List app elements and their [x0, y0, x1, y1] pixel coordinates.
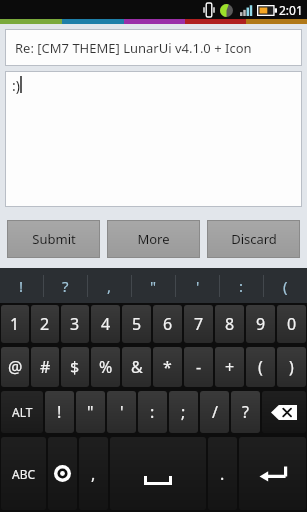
button[interactable]: Input settings	[48, 437, 77, 510]
button[interactable]: /	[200, 391, 229, 433]
button[interactable]: Enter	[239, 437, 306, 510]
staticText: )	[289, 356, 294, 378]
button[interactable]: :	[138, 391, 167, 433]
staticText: Discard	[231, 230, 277, 248]
staticText: More	[137, 230, 170, 248]
button[interactable]: :	[220, 268, 263, 303]
staticText: @	[8, 356, 23, 378]
staticText: &	[131, 356, 143, 378]
staticText: "	[150, 276, 157, 296]
staticText: Submit	[32, 230, 76, 248]
staticText: 7	[194, 313, 204, 335]
staticText: 8	[225, 313, 235, 335]
staticText: !	[19, 276, 24, 296]
staticText: ALT	[12, 404, 33, 420]
button[interactable]: More	[107, 220, 200, 258]
button[interactable]: Submit	[7, 220, 100, 258]
button[interactable]: ;	[169, 391, 198, 433]
button[interactable]: ?	[231, 391, 260, 433]
button[interactable]: 7	[184, 305, 213, 343]
staticText: (	[258, 356, 263, 378]
staticText: !	[57, 401, 62, 423]
staticText: 4	[101, 313, 111, 335]
button[interactable]: 6	[153, 305, 182, 343]
button[interactable]: *	[153, 347, 182, 387]
staticText: :	[150, 401, 155, 423]
button[interactable]: 3	[61, 305, 89, 343]
button[interactable]: Backspace	[262, 391, 306, 433]
button[interactable]: &	[122, 347, 151, 387]
button[interactable]: Re: [CM7 THEME] LunarUi v4.1.0 + Icon	[5, 29, 302, 66]
button[interactable]: #	[31, 347, 59, 387]
staticText: -	[196, 356, 202, 378]
staticText: ,	[107, 276, 112, 296]
button[interactable]: '	[107, 391, 136, 433]
button[interactable]: :)	[5, 71, 302, 207]
staticText: :)	[12, 76, 20, 95]
button[interactable]: 4	[91, 305, 120, 343]
button[interactable]: ,	[79, 437, 108, 510]
button[interactable]: $	[61, 347, 89, 387]
button[interactable]: Discard	[207, 220, 300, 258]
button[interactable]: %	[91, 347, 120, 387]
button[interactable]: 5	[122, 305, 151, 343]
button[interactable]: ABC	[1, 437, 46, 510]
button[interactable]: !	[45, 391, 74, 433]
staticText: $	[70, 356, 80, 378]
staticText: ?	[242, 401, 249, 423]
staticText: ABC	[12, 466, 36, 482]
button[interactable]: ,	[88, 268, 131, 303]
staticText: 6	[163, 313, 173, 335]
button[interactable]: ALT	[1, 391, 43, 433]
button[interactable]: 0	[277, 305, 306, 343]
staticText: *	[163, 356, 172, 378]
button[interactable]: ?	[44, 268, 87, 303]
staticText: 3	[70, 313, 80, 335]
staticText: ,	[91, 463, 96, 485]
staticText: '	[120, 401, 124, 423]
button[interactable]: "	[76, 391, 105, 433]
button[interactable]: (	[264, 268, 307, 303]
staticText: 5	[132, 313, 142, 335]
staticText: ;	[181, 401, 186, 423]
staticText: #	[40, 356, 51, 378]
staticText: 0	[287, 313, 297, 335]
staticText: (	[283, 276, 288, 296]
staticText: 2:01	[279, 2, 303, 18]
button[interactable]: Space	[110, 437, 206, 510]
staticText: %	[99, 356, 113, 378]
button[interactable]: 2	[31, 305, 59, 343]
staticText: 2	[40, 313, 50, 335]
button[interactable]: 1	[1, 305, 29, 343]
button[interactable]: 8	[215, 305, 244, 343]
staticText: /	[212, 401, 218, 423]
button[interactable]: +	[215, 347, 244, 387]
button[interactable]: !	[0, 268, 43, 303]
button[interactable]: -	[184, 347, 213, 387]
button[interactable]: (	[246, 347, 275, 387]
staticText: Re: [CM7 THEME] LunarUi v4.1.0 + Icon	[15, 39, 252, 57]
staticText: 9	[256, 313, 266, 335]
button[interactable]: '	[176, 268, 219, 303]
button[interactable]: .	[208, 437, 237, 510]
staticText: 1	[10, 313, 20, 335]
staticText: +	[225, 356, 235, 378]
button[interactable]: )	[277, 347, 306, 387]
staticText: ?	[62, 276, 69, 296]
button[interactable]: "	[132, 268, 175, 303]
staticText: "	[87, 401, 94, 423]
button[interactable]: @	[1, 347, 29, 387]
staticText: :	[239, 276, 244, 296]
button[interactable]: 9	[246, 305, 275, 343]
staticText: '	[196, 276, 200, 296]
staticText: .	[220, 463, 225, 485]
